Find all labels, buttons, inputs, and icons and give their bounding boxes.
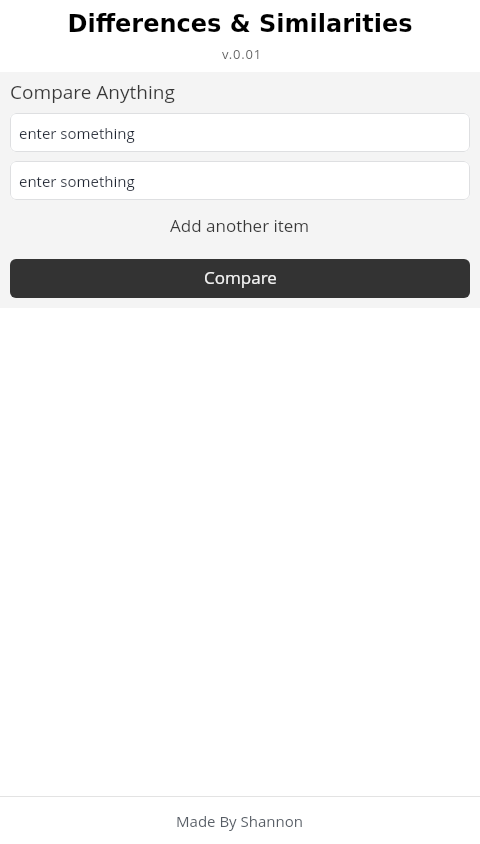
button[interactable]: Compare <box>10 259 470 298</box>
button[interactable]: Add another item <box>0 212 480 238</box>
staticText: enter something <box>19 171 135 191</box>
button[interactable]: Second item to compare <box>10 161 470 200</box>
staticText: Compare Anything <box>10 79 175 105</box>
staticText: Made By Shannon <box>176 811 304 831</box>
staticText: v.0.01 <box>2 45 480 63</box>
staticText: Differences & Similarities <box>0 10 480 38</box>
button[interactable]: First item to compare <box>10 113 470 152</box>
staticText: Add another item <box>170 214 310 237</box>
staticText: enter something <box>19 123 135 143</box>
staticText: Compare <box>204 266 277 289</box>
